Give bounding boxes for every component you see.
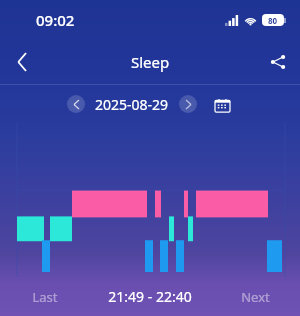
- staticText: 2025-08-29: [95, 95, 169, 114]
- staticText: 80: [268, 15, 278, 26]
- staticText: 09:02: [36, 10, 75, 30]
- staticText: Last: [32, 288, 58, 306]
- button[interactable]: Last: [0, 277, 89, 316]
- button[interactable]: Previous day: [67, 95, 85, 113]
- button[interactable]: Share: [256, 40, 300, 84]
- staticText: Next: [241, 288, 270, 306]
- staticText: Sleep: [131, 52, 170, 72]
- button[interactable]: Next day: [179, 95, 197, 113]
- button[interactable]: Next: [210, 277, 300, 316]
- staticText: 21:49 - 22:40: [108, 287, 192, 306]
- button[interactable]: Back: [0, 40, 44, 84]
- button[interactable]: Pick date: [211, 93, 233, 115]
